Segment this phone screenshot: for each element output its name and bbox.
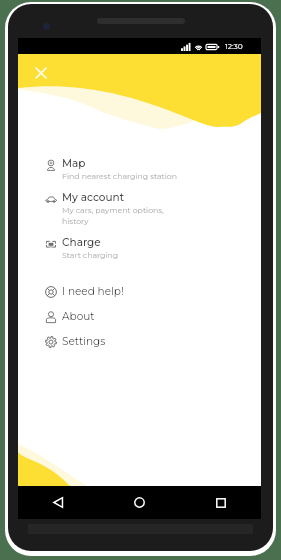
button[interactable]: About bbox=[18, 304, 261, 329]
button[interactable]: Settings bbox=[18, 329, 261, 354]
staticText: Start charging bbox=[62, 250, 119, 260]
button[interactable]: I need help! bbox=[18, 279, 261, 304]
button[interactable]: Recents bbox=[180, 486, 261, 519]
button[interactable]: Back bbox=[18, 486, 99, 519]
staticText: About bbox=[62, 310, 95, 323]
staticText: Settings bbox=[62, 335, 106, 348]
staticText: My cars, payment options, history bbox=[62, 205, 164, 226]
button[interactable]: Home bbox=[99, 486, 180, 519]
button[interactable]: Close bbox=[30, 62, 52, 84]
staticText: Find nearest charging station bbox=[62, 171, 178, 181]
staticText: My account bbox=[62, 191, 125, 204]
button[interactable]: Charge bbox=[18, 231, 261, 265]
staticText: I need help! bbox=[62, 285, 124, 298]
button[interactable]: Map bbox=[18, 152, 261, 186]
staticText: 12:30 bbox=[225, 42, 243, 51]
staticText: Map bbox=[62, 157, 86, 170]
button[interactable]: My account bbox=[18, 186, 261, 231]
staticText: Charge bbox=[62, 236, 101, 249]
